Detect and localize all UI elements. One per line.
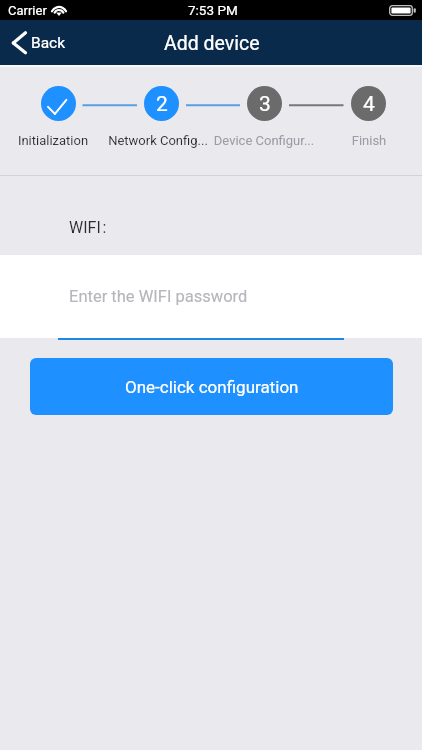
staticText: Initialization — [1, 133, 105, 148]
other: Step completed — [41, 86, 76, 121]
button[interactable]: 2 — [106, 78, 210, 148]
other: Battery full — [389, 5, 417, 16]
staticText: 2 — [156, 92, 168, 117]
staticText: Finish — [317, 133, 421, 148]
button[interactable]: 3 — [212, 78, 316, 148]
button[interactable]: Step completed — [1, 78, 105, 148]
button[interactable]: Enter the WIFI password — [0, 255, 422, 338]
staticText: 7:53 PM — [188, 2, 238, 18]
staticText: Carrier — [8, 3, 47, 18]
staticText: Network Config... — [106, 133, 210, 148]
staticText: Device Configur... — [212, 133, 316, 148]
staticText: Add device — [164, 32, 260, 55]
staticText: 3 — [259, 92, 271, 117]
button[interactable]: 4 — [317, 78, 421, 148]
staticText: Enter the WIFI password — [69, 287, 248, 306]
staticText: Back — [31, 34, 66, 52]
staticText: 4 — [363, 92, 375, 117]
button[interactable]: One-click configuration — [30, 358, 393, 415]
button[interactable]: Back — [0, 20, 80, 65]
staticText: WIFI : — [69, 218, 107, 237]
other: Wi-Fi signal — [51, 5, 67, 15]
staticText: One-click configuration — [125, 377, 299, 397]
